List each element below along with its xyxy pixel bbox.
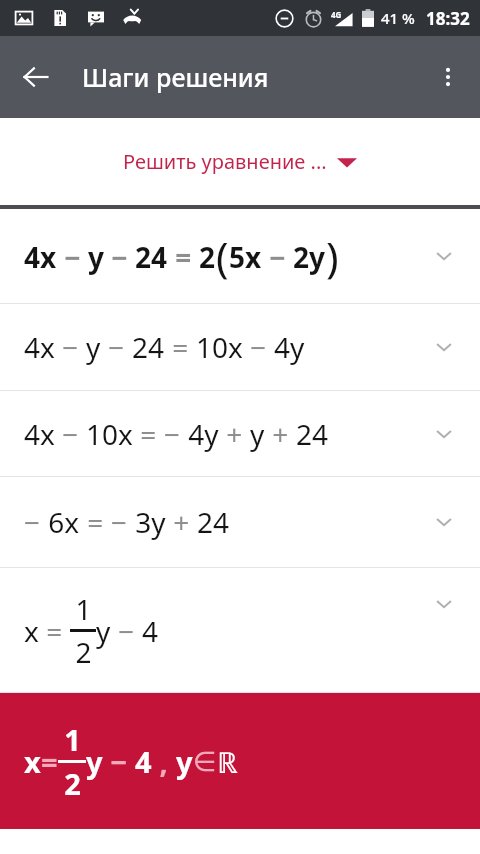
staticText: − — [111, 503, 128, 541]
button[interactable]: 4x — [0, 209, 480, 303]
staticText: 24 — [132, 328, 165, 366]
button[interactable]: Ещё — [424, 53, 472, 101]
staticText: = — [133, 415, 164, 453]
staticText: − — [55, 415, 86, 453]
staticText: ∈ — [193, 746, 217, 777]
staticText: 4x — [24, 415, 55, 453]
staticText: + — [219, 415, 250, 453]
staticText: − — [101, 328, 132, 366]
staticText: = — [80, 503, 111, 541]
staticText: 24 — [135, 238, 168, 276]
staticText: − — [243, 328, 274, 366]
staticText: 2y — [293, 238, 326, 276]
staticText: 10x — [86, 415, 133, 453]
staticText: = — [41, 742, 58, 781]
staticText: 4y — [181, 415, 219, 453]
staticText: y — [250, 415, 265, 453]
staticText: − — [55, 328, 86, 366]
button[interactable]: Показать подробности — [422, 582, 466, 626]
staticText: + — [265, 415, 296, 453]
staticText: − — [104, 238, 135, 276]
button[interactable]: Показать подробности — [422, 500, 466, 544]
staticText: 4G — [331, 9, 342, 20]
staticText: − — [103, 742, 135, 781]
staticText: 1 — [75, 590, 92, 628]
button[interactable]: 4x — [0, 391, 480, 476]
staticText: − — [164, 415, 181, 453]
staticText: y — [86, 742, 103, 781]
staticText: ) — [326, 228, 339, 285]
button[interactable]: Показать подробности — [422, 325, 466, 369]
button[interactable]: 4x — [0, 304, 480, 390]
staticText: Решить уравнение ... — [123, 148, 327, 175]
staticText: 6x — [41, 503, 80, 541]
button[interactable]: x — [0, 568, 480, 692]
staticText: 4x — [24, 328, 55, 366]
staticText: y — [86, 328, 101, 366]
staticText: 24 — [197, 503, 230, 541]
staticText: ( — [216, 228, 229, 285]
button[interactable]: Показать подробности — [422, 234, 466, 278]
staticText: 4 — [142, 612, 159, 650]
staticText: Шаги решения — [82, 60, 269, 94]
button[interactable]: x — [0, 693, 480, 829]
staticText: y — [176, 742, 193, 781]
staticText: 24 — [296, 415, 329, 453]
staticText: 2 — [199, 238, 216, 276]
staticText: 18:32 — [426, 7, 470, 30]
button[interactable]: Показать подробности — [422, 412, 466, 456]
staticText: x — [24, 742, 41, 781]
staticText: + — [166, 503, 197, 541]
staticText: 4x — [24, 238, 57, 276]
staticText: − — [111, 612, 142, 650]
button[interactable]: Назад — [12, 53, 60, 101]
staticText: 4y — [274, 328, 305, 366]
staticText: 2 — [64, 764, 81, 803]
staticText: = — [168, 238, 199, 276]
staticText: 3y — [128, 503, 166, 541]
staticText: 1 — [64, 720, 81, 759]
staticText: x — [24, 612, 39, 650]
staticText: ℝ — [217, 742, 238, 781]
staticText: 41 % — [381, 8, 415, 28]
staticText: y — [96, 612, 111, 650]
staticText: − — [57, 238, 88, 276]
button[interactable]: Решить уравнение ... — [123, 148, 357, 175]
staticText: 4 — [135, 742, 152, 781]
staticText: = — [39, 612, 70, 650]
staticText: − — [24, 503, 41, 541]
staticText: = — [165, 328, 196, 366]
staticText: − — [262, 238, 293, 276]
staticText: y — [88, 238, 104, 276]
staticText: 5x — [229, 238, 262, 276]
staticText: , — [152, 742, 176, 781]
staticText: 2 — [75, 633, 92, 671]
staticText: 10x — [196, 328, 243, 366]
button[interactable]: − — [0, 477, 480, 567]
